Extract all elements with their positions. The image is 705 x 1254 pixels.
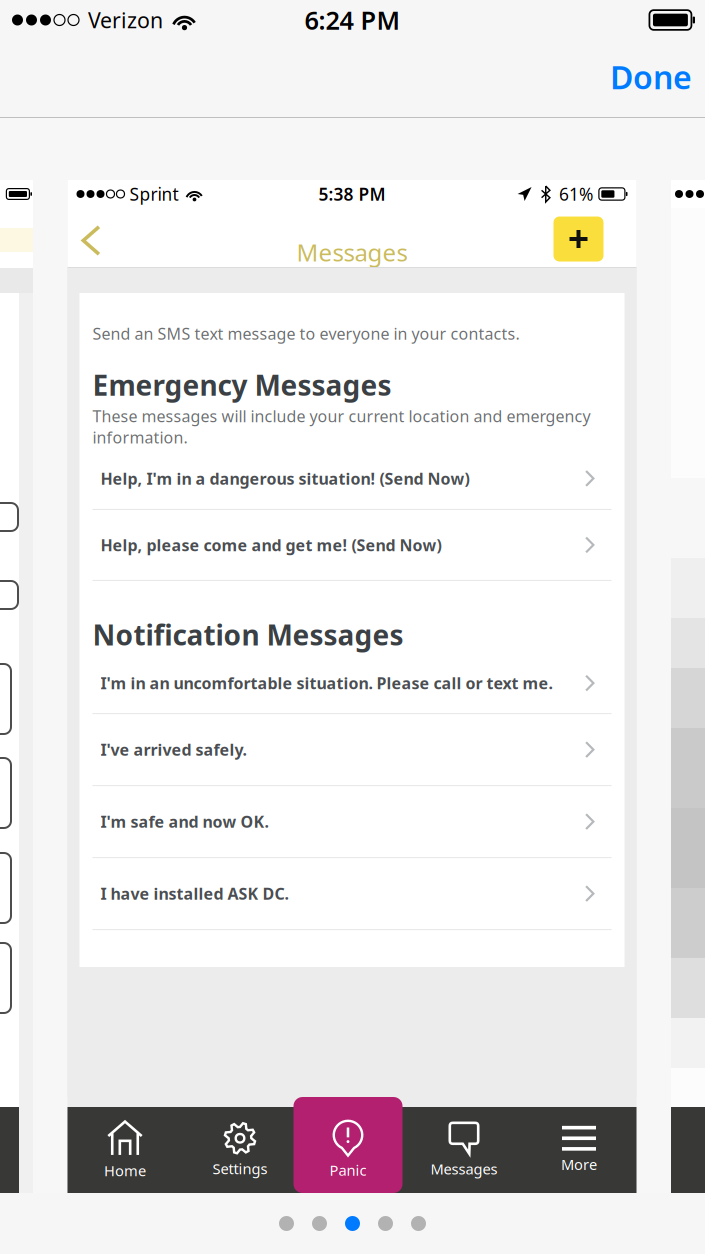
button[interactable]: I've arrived safely. <box>79 714 624 786</box>
staticText: 6:24 PM <box>304 3 400 37</box>
staticText: Sprint <box>129 182 178 205</box>
staticText: I have installed ASK DC. <box>100 883 288 904</box>
staticText: Send an SMS text message to everyone in … <box>92 323 519 344</box>
staticText: I'm in an uncomfortable situation. Pleas… <box>100 672 552 694</box>
staticText: 5:38 PM <box>318 182 385 205</box>
button[interactable]: Help, please come and get me! (Send Now) <box>79 510 624 581</box>
button[interactable]: More <box>521 1107 636 1193</box>
staticText: Notification Messages <box>92 616 403 653</box>
button[interactable]: Settings <box>182 1107 297 1193</box>
staticText: Help, please come and get me! (Send Now) <box>100 534 441 555</box>
staticText: Panic <box>329 1160 366 1180</box>
button[interactable]: New message <box>553 216 636 264</box>
staticText: Messages <box>430 1159 497 1178</box>
staticText: These messages will include your current… <box>92 405 590 448</box>
button[interactable]: I have installed ASK DC. <box>79 858 624 930</box>
staticText: Emergency Messages <box>92 366 391 403</box>
staticText: Messages <box>296 236 407 268</box>
staticText: Done <box>610 55 692 98</box>
staticText: More <box>561 1155 597 1174</box>
button[interactable]: Messages <box>406 1107 521 1193</box>
button[interactable]: Panic <box>293 1097 402 1193</box>
staticText: Help, I'm in a dangerous situation! (Sen… <box>100 468 469 489</box>
button[interactable]: I'm in an uncomfortable situation. Pleas… <box>79 653 624 714</box>
button[interactable]: Back <box>67 213 117 268</box>
button[interactable]: I'm safe and now OK. <box>79 786 624 858</box>
button[interactable]: Help, I'm in a dangerous situation! (Sen… <box>79 448 624 510</box>
staticText: I've arrived safely. <box>100 739 246 760</box>
staticText: Home <box>104 1161 146 1180</box>
staticText: 61% <box>559 182 593 205</box>
button[interactable]: Done <box>593 47 705 118</box>
button[interactable]: Home <box>67 1107 182 1193</box>
staticText: I'm safe and now OK. <box>100 811 268 832</box>
staticText: Verizon <box>88 6 163 34</box>
staticText: Settings <box>212 1159 267 1178</box>
